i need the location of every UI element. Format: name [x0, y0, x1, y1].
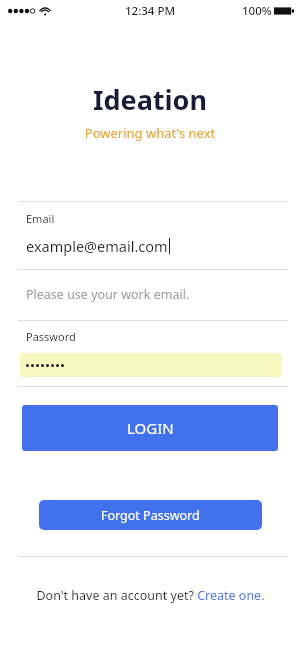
staticText: LOGIN — [127, 418, 174, 438]
staticText: Powering what's next — [0, 124, 300, 142]
staticText: Password — [26, 329, 76, 344]
staticText: Email — [26, 211, 55, 226]
staticText: Please use your work email. — [26, 286, 190, 303]
staticText: 100% — [242, 3, 272, 19]
button[interactable]: Forgot Password — [39, 500, 262, 530]
staticText: example@email.com — [26, 236, 168, 256]
button[interactable]: example@email.com — [26, 236, 282, 256]
staticText: Don't have an account yet? Create one. — [36, 587, 265, 604]
button[interactable]: LOGIN — [22, 405, 278, 451]
button[interactable]: Don't have an account yet? Create one. — [0, 587, 300, 604]
staticText: Forgot Password — [101, 507, 200, 524]
button[interactable] — [20, 353, 282, 377]
staticText: 12:34 PM — [125, 3, 176, 19]
staticText: Ideation — [0, 81, 300, 118]
